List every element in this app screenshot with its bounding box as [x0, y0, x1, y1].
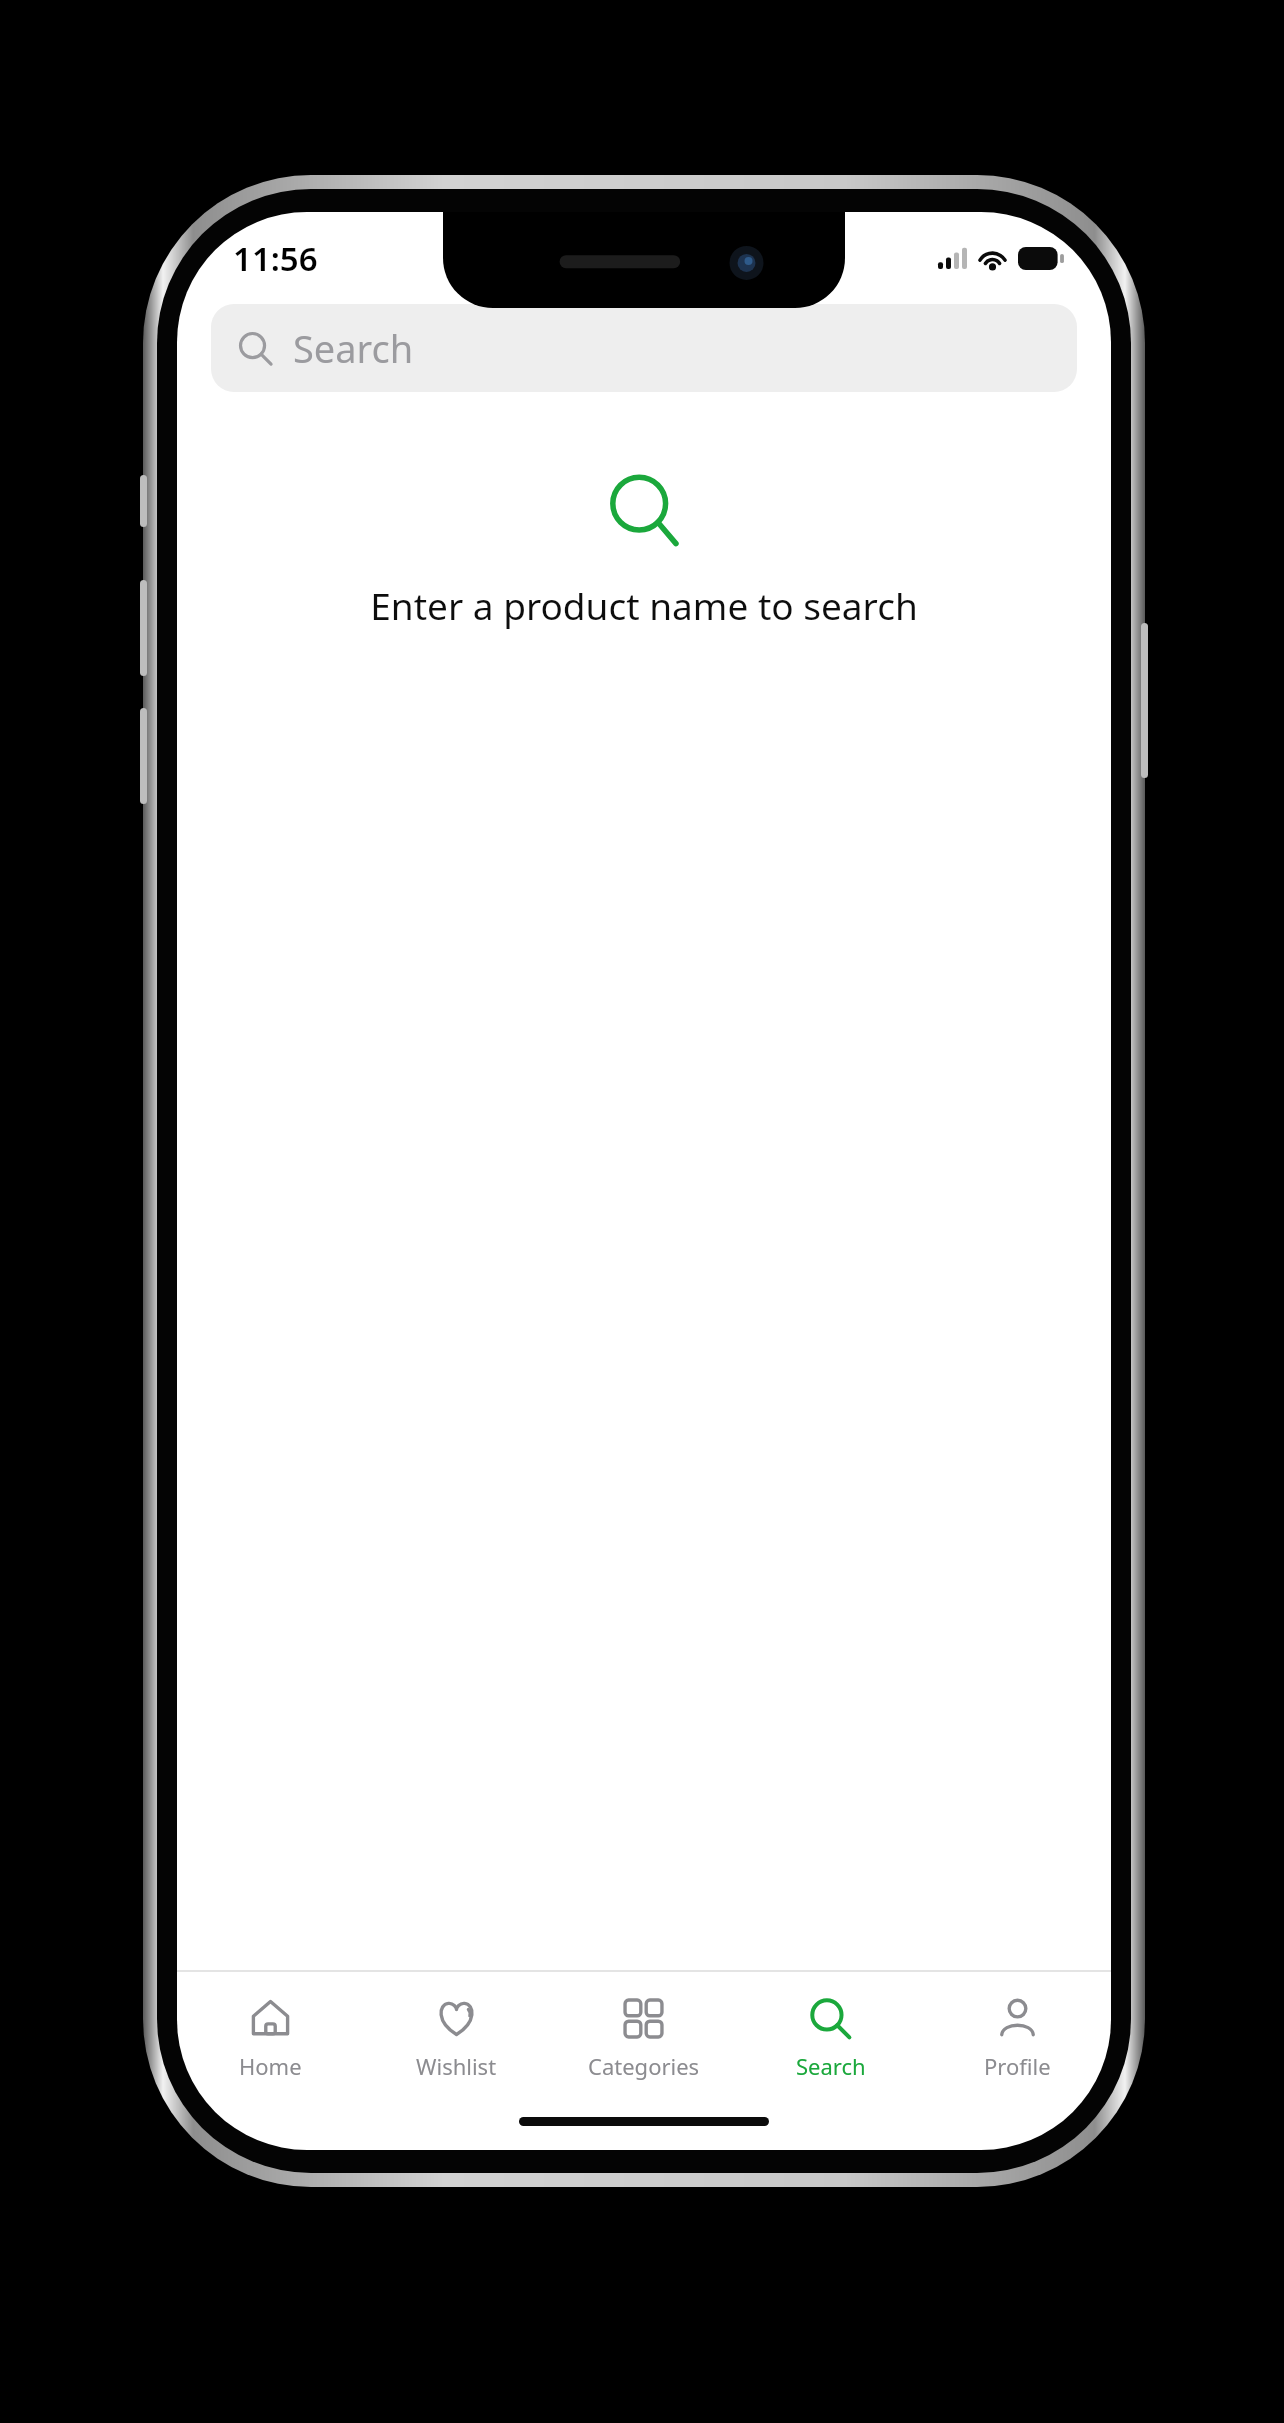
button[interactable]: Search — [737, 1972, 924, 2104]
staticText: Search — [293, 322, 414, 374]
button[interactable]: Profile — [924, 1972, 1111, 2104]
button[interactable]: Wishlist — [363, 1972, 550, 2104]
staticText: Enter a product name to search — [370, 580, 918, 630]
button[interactable]: Categories — [550, 1972, 737, 2104]
staticText: Wishlist — [416, 2051, 497, 2081]
other: Search — [808, 1996, 853, 2041]
other: Profile — [995, 1996, 1040, 2041]
staticText: Search — [796, 2051, 866, 2081]
staticText: Categories — [588, 2051, 700, 2081]
button[interactable]: Home — [177, 1972, 363, 2104]
staticText: Home — [239, 2051, 302, 2081]
other: Categories — [621, 1996, 666, 2041]
other: Wishlist — [434, 1996, 479, 2041]
other: Home — [248, 1996, 293, 2041]
staticText: Profile — [984, 2051, 1051, 2081]
staticText: 11:56 — [233, 236, 318, 281]
button[interactable]: Search — [211, 304, 1077, 392]
